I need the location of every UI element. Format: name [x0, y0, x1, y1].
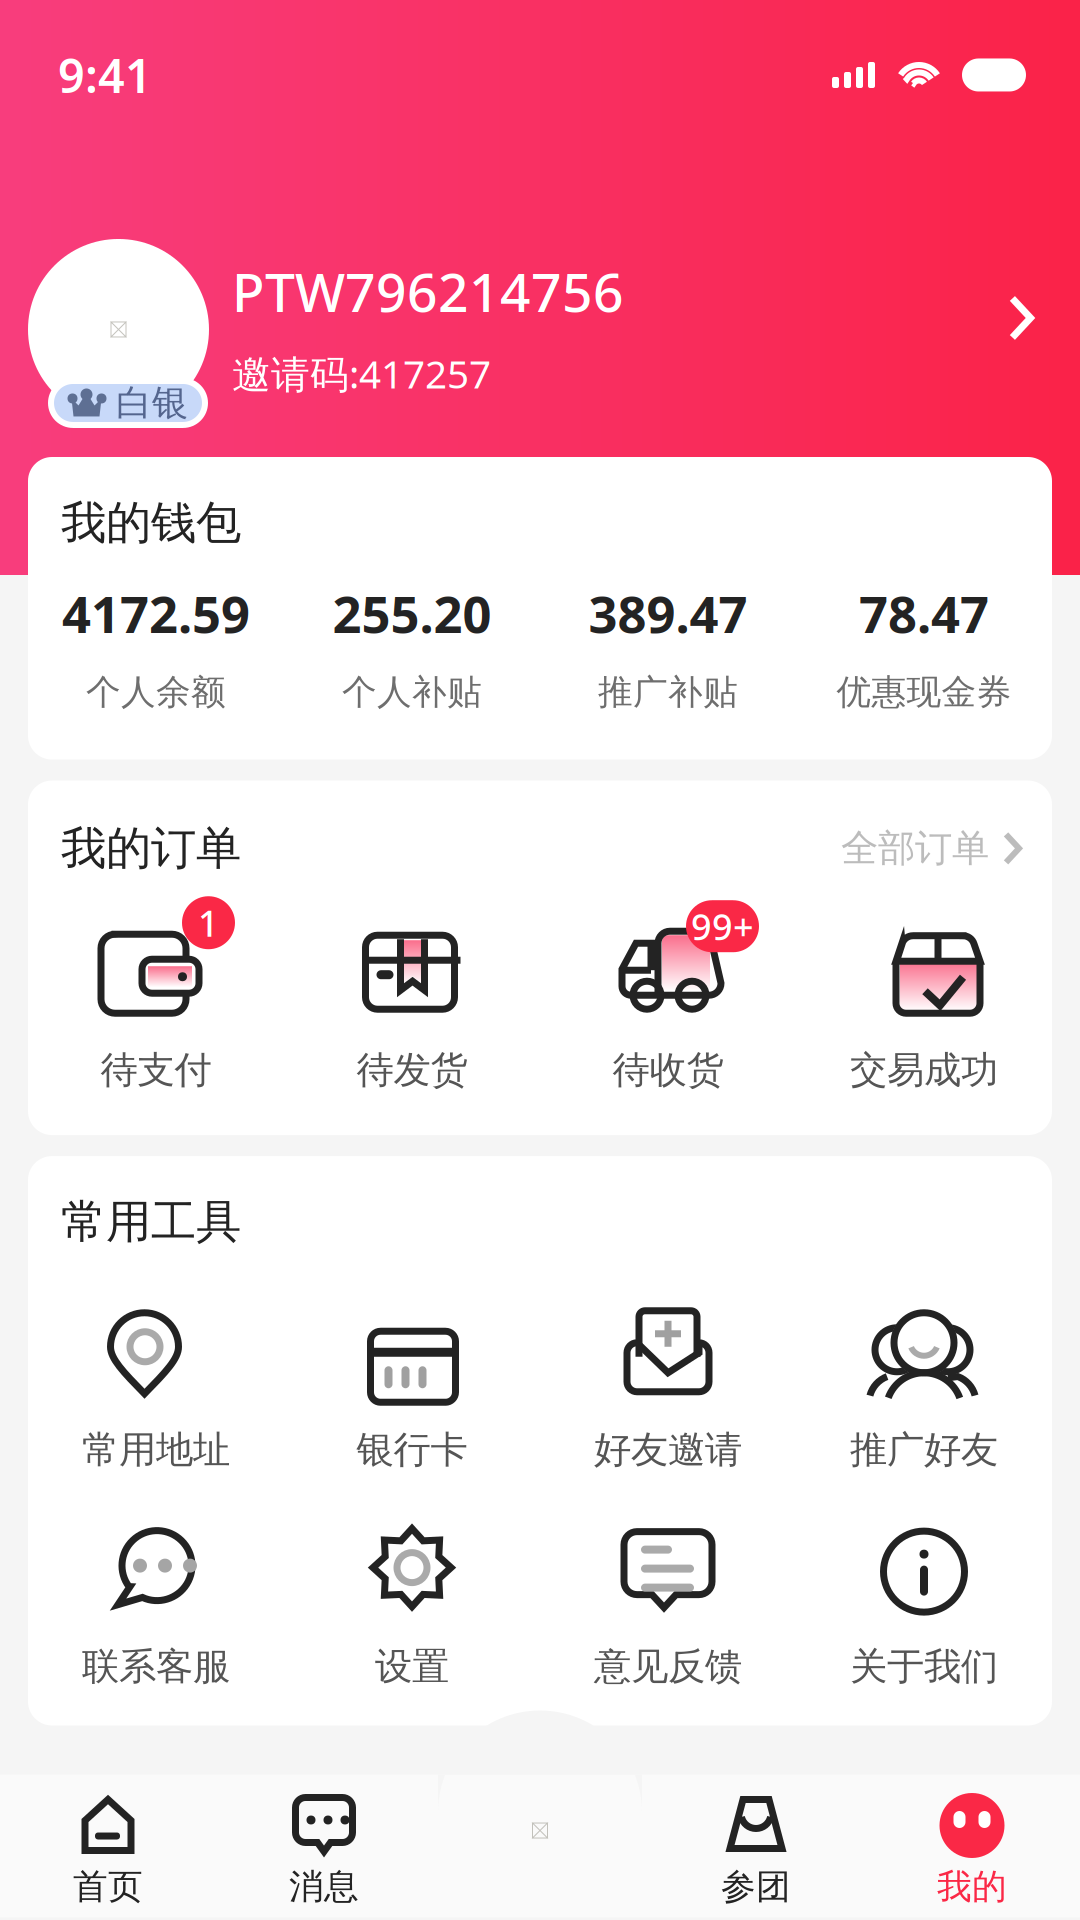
staticText: 推广补贴: [598, 671, 738, 714]
staticText: 9:41: [58, 44, 152, 106]
staticText: 255.20: [332, 580, 491, 647]
staticText: 推广好友: [850, 1427, 998, 1473]
staticText: 设置: [375, 1644, 449, 1689]
staticText: 关于我们: [850, 1644, 998, 1689]
staticText: 白银: [116, 381, 188, 425]
button[interactable]: 255.20: [284, 580, 540, 714]
staticText: 好友邀请: [594, 1427, 742, 1473]
button[interactable]: 389.47: [540, 580, 796, 714]
button[interactable]: 参团: [648, 1794, 864, 1908]
button[interactable]: 消息: [216, 1794, 432, 1908]
button[interactable]: 推广好友: [796, 1307, 1052, 1473]
staticText: 银行卡: [356, 1427, 467, 1473]
button[interactable]: 意见反馈: [540, 1524, 796, 1689]
image: [110, 321, 126, 337]
staticText: 个人补贴: [342, 671, 482, 714]
staticText: 联系客服: [82, 1644, 230, 1689]
button[interactable]: 交易成功: [796, 922, 1052, 1093]
staticText: 待收货: [612, 1047, 723, 1093]
staticText: 常用工具: [61, 1194, 241, 1250]
button[interactable]: 白银: [0, 239, 1080, 420]
staticText: 优惠现金券: [836, 671, 1011, 714]
button[interactable]: 4172.59: [28, 580, 284, 714]
button[interactable]: 好友邀请: [540, 1307, 796, 1473]
staticText: PTW796214756: [232, 256, 624, 327]
button[interactable]: 1: [28, 922, 284, 1093]
staticText: 1: [198, 899, 219, 947]
staticText: 78.47: [859, 580, 989, 647]
button[interactable]: 银行卡: [284, 1307, 540, 1473]
button[interactable]: 待发货: [284, 922, 540, 1093]
button[interactable]: 关于我们: [796, 1524, 1052, 1689]
button[interactable]: 我的: [864, 1794, 1080, 1908]
staticText: 待发货: [356, 1047, 467, 1093]
staticText: 首页: [73, 1865, 143, 1908]
staticText: 389.47: [588, 580, 747, 647]
staticText: 交易成功: [850, 1047, 998, 1093]
staticText: 4172.59: [62, 580, 250, 647]
button[interactable]: 78.47: [796, 580, 1052, 714]
staticText: 我的: [937, 1865, 1007, 1908]
staticText: 个人余额: [86, 671, 226, 714]
staticText: 我的钱包: [61, 495, 241, 551]
button[interactable]: 全部订单: [841, 825, 1022, 871]
staticText: 99+: [691, 902, 754, 950]
button[interactable]: 99+: [540, 922, 796, 1093]
button[interactable]: 联系客服: [28, 1524, 284, 1689]
button[interactable]: 拼团: [466, 1756, 614, 1904]
staticText: 邀请码:417257: [232, 348, 491, 399]
button[interactable]: 常用地址: [28, 1307, 284, 1473]
staticText: 待支付: [100, 1047, 211, 1093]
button[interactable]: 首页: [0, 1794, 216, 1908]
staticText: 常用地址: [82, 1427, 230, 1473]
staticText: 参团: [721, 1865, 791, 1908]
button[interactable]: 设置: [284, 1524, 540, 1689]
staticText: 消息: [289, 1865, 359, 1908]
staticText: 意见反馈: [594, 1644, 742, 1689]
image: [532, 1822, 548, 1838]
staticText: 全部订单: [841, 825, 989, 871]
staticText: 我的订单: [61, 820, 241, 876]
